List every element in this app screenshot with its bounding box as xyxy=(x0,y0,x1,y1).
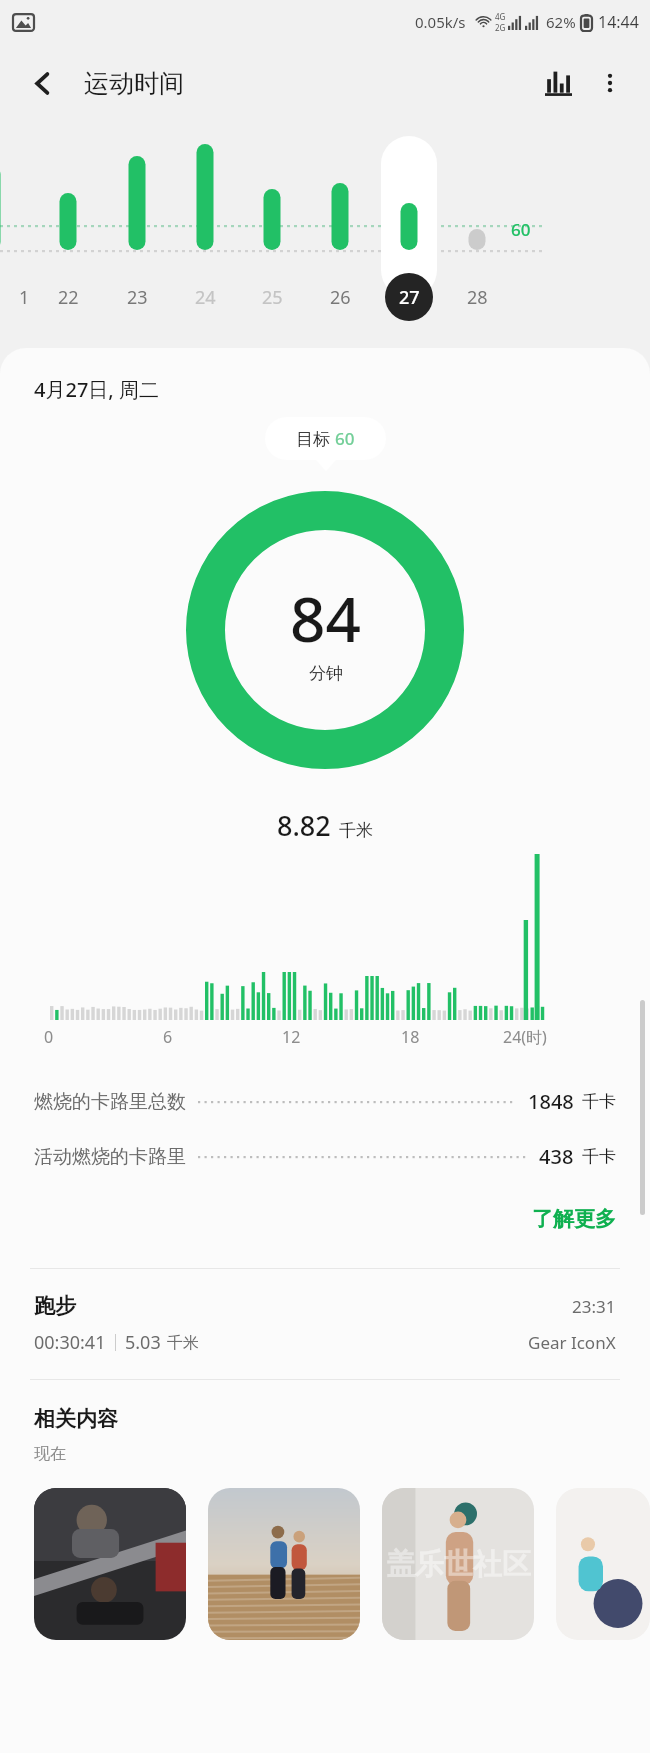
staticText: 6 xyxy=(163,1026,173,1048)
button[interactable]: 22 xyxy=(44,273,92,321)
staticText: 0 xyxy=(44,1026,54,1048)
button[interactable]: Statistics xyxy=(532,57,584,109)
button[interactable]: 25 xyxy=(248,273,296,321)
staticText: 千米 xyxy=(339,820,373,841)
button[interactable]: 1 xyxy=(0,273,48,321)
staticText: 28 xyxy=(467,285,488,310)
button[interactable]: Exercise ball xyxy=(556,1488,650,1640)
staticText: 目标 xyxy=(296,427,335,450)
staticText: Gear IconX xyxy=(528,1331,616,1354)
staticText: 00:30:41 xyxy=(34,1330,106,1355)
staticText: 了解更多 xyxy=(532,1206,616,1232)
button[interactable]: Gym workout xyxy=(34,1488,186,1640)
button[interactable]: 燃烧的卡路里总数 xyxy=(0,1082,650,1121)
staticText: 24 xyxy=(195,285,216,310)
button[interactable]: Fitness xyxy=(382,1488,534,1640)
staticText: 千米 xyxy=(167,1333,199,1353)
button[interactable]: 23 xyxy=(113,273,161,321)
staticText: 14:44 xyxy=(598,11,639,33)
staticText: 分钟 xyxy=(309,663,343,684)
staticText: 12 xyxy=(282,1026,301,1048)
staticText: 千卡 xyxy=(582,1091,616,1112)
staticText: 23 xyxy=(127,285,148,310)
staticText: 相关内容 xyxy=(34,1406,118,1432)
staticText: 62% xyxy=(546,12,576,32)
staticText: 18 xyxy=(401,1026,420,1048)
staticText: 23:31 xyxy=(572,1295,616,1318)
staticText: 千卡 xyxy=(582,1146,616,1167)
staticText: 2G xyxy=(495,22,506,33)
staticText: 4月27日, 周二 xyxy=(34,376,159,403)
staticText: 活动燃烧的卡路里 xyxy=(34,1145,186,1169)
staticText: 1848 xyxy=(528,1088,574,1115)
button[interactable]: Back xyxy=(16,57,68,109)
button[interactable]: 27 xyxy=(385,273,433,321)
staticText: 26 xyxy=(330,285,351,310)
button[interactable]: 跑步 xyxy=(0,1293,650,1355)
staticText: 5.03 xyxy=(125,1330,161,1355)
staticText: 8.82 xyxy=(277,807,331,844)
staticText: 1 xyxy=(19,285,30,310)
button[interactable]: Running xyxy=(208,1488,360,1640)
button[interactable]: 28 xyxy=(453,273,501,321)
staticText: 跑步 xyxy=(34,1293,76,1319)
staticText: 燃烧的卡路里总数 xyxy=(34,1090,186,1114)
staticText: 84 xyxy=(290,576,361,660)
staticText: 27 xyxy=(399,285,420,310)
staticText: 60 xyxy=(335,427,355,450)
staticText: 0.05k/s xyxy=(415,12,466,32)
staticText: 24(时) xyxy=(503,1026,547,1048)
button[interactable]: 24 xyxy=(181,273,229,321)
staticText: 438 xyxy=(539,1143,574,1170)
button[interactable]: 了解更多 xyxy=(532,1198,650,1240)
staticText: 4G xyxy=(495,11,506,22)
staticText: 22 xyxy=(58,285,79,310)
button[interactable]: 26 xyxy=(316,273,364,321)
staticText: 25 xyxy=(262,285,283,310)
staticText: 现在 xyxy=(34,1444,66,1464)
button[interactable]: More options xyxy=(584,57,636,109)
staticText: 运动时间 xyxy=(84,68,184,99)
button[interactable]: 活动燃烧的卡路里 xyxy=(0,1137,650,1176)
button[interactable]: 目标 xyxy=(265,417,386,460)
staticText: 盖乐世社区 xyxy=(386,1546,531,1583)
staticText: 60 xyxy=(511,218,531,241)
